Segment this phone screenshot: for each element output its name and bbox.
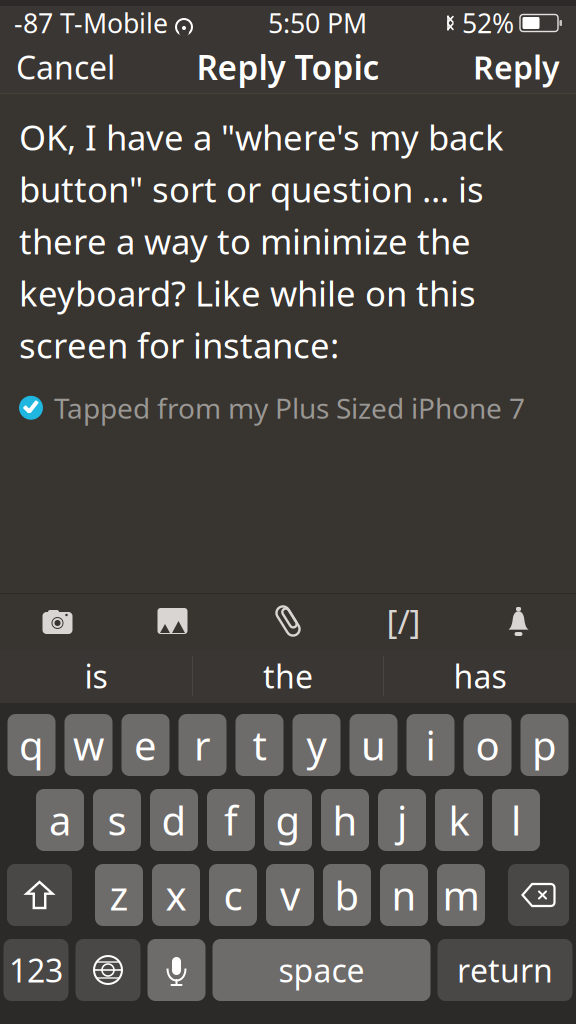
staticText: 123	[9, 949, 63, 991]
button[interactable]: d	[150, 789, 198, 851]
button[interactable]: Delete	[508, 864, 569, 926]
staticText: s	[107, 793, 126, 846]
staticText: has	[453, 655, 506, 697]
staticText: Cancel	[16, 46, 115, 88]
button[interactable]: g	[264, 789, 312, 851]
button[interactable]: b	[323, 864, 371, 926]
button[interactable]: Notifications	[461, 593, 576, 649]
staticText: z	[109, 868, 128, 921]
staticText: -87 T-Mobile	[14, 5, 168, 41]
button[interactable]: s	[93, 789, 141, 851]
staticText: x	[165, 868, 186, 921]
button[interactable]: h	[321, 789, 369, 851]
staticText: i	[425, 718, 435, 771]
button[interactable]: return	[437, 939, 572, 1001]
button[interactable]: i	[406, 714, 454, 776]
button[interactable]: the	[193, 649, 383, 703]
button[interactable]: v	[266, 864, 314, 926]
staticText: d	[161, 793, 186, 846]
staticText: u	[361, 718, 386, 771]
staticText: space	[278, 949, 364, 991]
button[interactable]: j	[378, 789, 426, 851]
button[interactable]: x	[152, 864, 200, 926]
staticText: m	[442, 868, 479, 921]
staticText: f	[224, 793, 238, 846]
staticText: p	[532, 718, 557, 771]
staticText: o	[475, 718, 499, 771]
staticText: Reply	[473, 46, 560, 88]
button[interactable]: e	[121, 714, 169, 776]
staticText: Tapped from my Plus Sized iPhone 7	[54, 389, 525, 426]
button[interactable]: w	[64, 714, 112, 776]
button[interactable]: t	[235, 714, 283, 776]
staticText: 5:50 PM	[268, 5, 367, 41]
button[interactable]: Dictate	[147, 939, 205, 1001]
button[interactable]: l	[492, 789, 540, 851]
button[interactable]: n	[380, 864, 428, 926]
staticText: a	[49, 793, 71, 846]
button[interactable]: u	[349, 714, 397, 776]
button[interactable]: z	[95, 864, 143, 926]
staticText: OK, I have a "where's my back button" so…	[19, 114, 504, 368]
button[interactable]: Reply	[457, 40, 576, 94]
staticText: c	[223, 868, 242, 921]
button[interactable]: Attach file	[230, 593, 346, 649]
button[interactable]: f	[207, 789, 255, 851]
button[interactable]: c	[209, 864, 257, 926]
button[interactable]: is	[0, 649, 192, 703]
button[interactable]: Shift	[7, 864, 72, 926]
staticText: 52%	[462, 5, 514, 41]
button[interactable]: a	[36, 789, 84, 851]
staticText: Reply Topic	[196, 45, 379, 89]
staticText: return	[457, 949, 553, 991]
staticText: k	[448, 793, 469, 846]
staticText: b	[334, 868, 359, 921]
button[interactable]: space	[212, 939, 430, 1001]
button[interactable]: m	[437, 864, 485, 926]
button[interactable]: has	[384, 649, 576, 703]
staticText: y	[306, 718, 326, 771]
button[interactable]: Cancel	[0, 40, 131, 94]
button[interactable]: 123	[3, 939, 68, 1001]
staticText: v	[280, 868, 300, 921]
button[interactable]: o	[463, 714, 511, 776]
staticText: t	[252, 718, 266, 771]
button[interactable]: r	[178, 714, 226, 776]
staticText: g	[275, 793, 300, 846]
button[interactable]: k	[435, 789, 483, 851]
button[interactable]: y	[292, 714, 340, 776]
button[interactable]: BB code	[346, 593, 461, 649]
button[interactable]: Camera	[0, 593, 115, 649]
staticText: h	[332, 793, 357, 846]
button[interactable]: Photo Library	[115, 593, 230, 649]
button[interactable]: Next keyboard	[75, 939, 140, 1001]
staticText: l	[511, 793, 521, 846]
staticText: r	[194, 718, 211, 771]
staticText: w	[73, 718, 104, 771]
staticText: e	[134, 718, 157, 771]
staticText: is	[84, 655, 107, 697]
button[interactable]: q	[7, 714, 55, 776]
staticText: q	[19, 718, 44, 771]
button[interactable]: p	[520, 714, 568, 776]
staticText: n	[391, 868, 416, 921]
staticText: j	[397, 793, 407, 846]
staticText: the	[263, 655, 313, 697]
staticText: [/]	[386, 599, 420, 643]
